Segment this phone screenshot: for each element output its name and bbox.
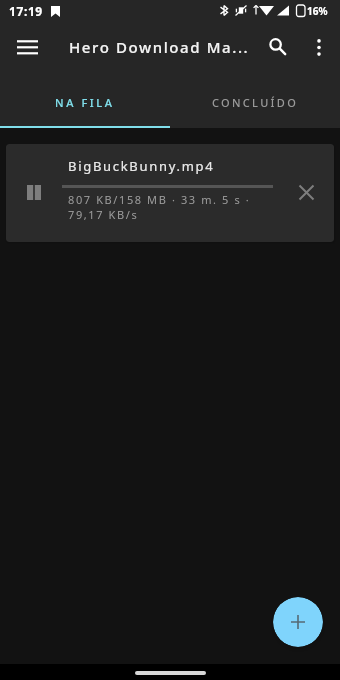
button[interactable]: Cancel download	[284, 170, 328, 214]
staticText: Hero Download Ma...	[69, 37, 250, 57]
staticText: 807 KB/158 MB · 33 m. 5 s · 79,17 KB/s	[68, 192, 279, 222]
staticText: BigBuckBunny.mp4	[68, 157, 215, 175]
staticText: NA FILA	[55, 95, 115, 110]
button[interactable]: More options	[299, 27, 339, 67]
button[interactable]: Search	[258, 27, 298, 67]
button[interactable]: CONCLUÍDO	[170, 75, 340, 130]
button[interactable]: Navigation menu	[5, 25, 49, 69]
staticText: 16%	[307, 4, 328, 18]
button[interactable]: Pause download	[12, 170, 56, 214]
button[interactable]: Pause download	[6, 144, 334, 242]
staticText: CONCLUÍDO	[212, 95, 299, 110]
staticText: 17:19	[9, 3, 43, 19]
button[interactable]: Add download	[273, 597, 323, 647]
button[interactable]: NA FILA	[0, 75, 170, 130]
